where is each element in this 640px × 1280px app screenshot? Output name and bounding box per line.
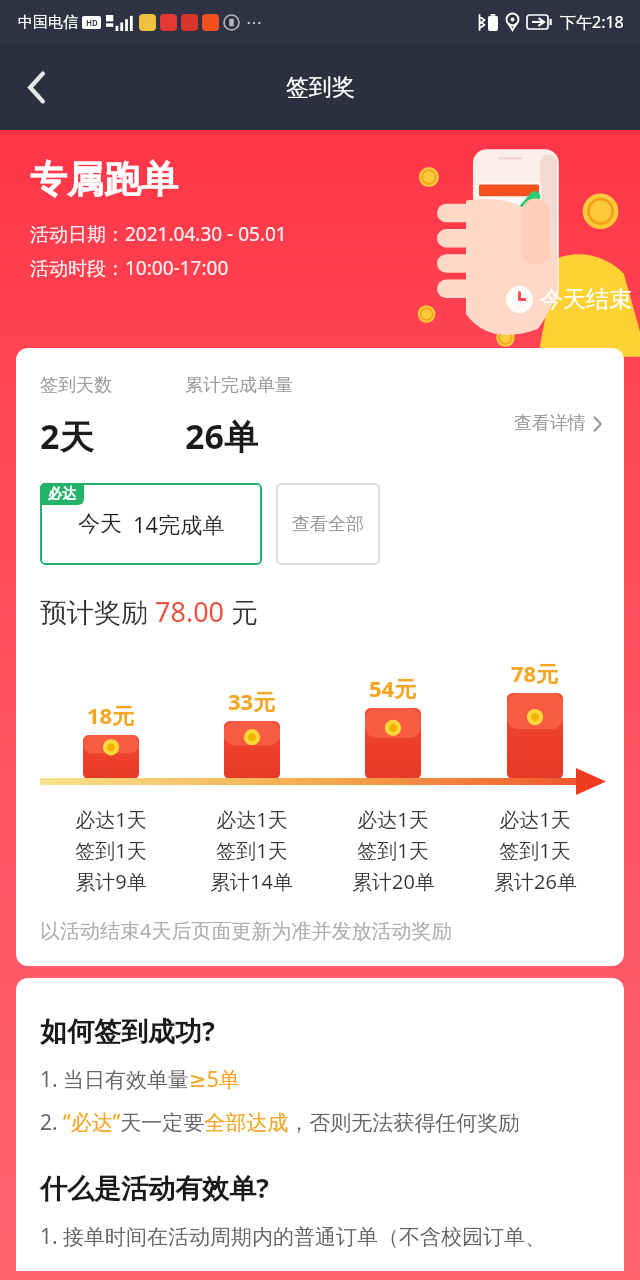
staticText: 26单 [185,413,258,459]
staticText: 33元 [228,686,276,716]
staticText: 签到奖 [286,73,355,102]
staticText: 今天 [78,510,122,538]
button[interactable]: 查看详情 [510,408,606,439]
staticText: 今天结束 [540,285,632,314]
staticText: 78元 [511,658,559,688]
staticText: 查看详情 [514,412,586,435]
staticText: 必达 [48,485,76,503]
staticText: 活动时段：10:00-17:00 [30,255,229,281]
button[interactable]: 返回 [0,44,72,130]
staticText: 必达1天 [216,806,288,833]
staticText: 1. 接单时间在活动周期内的普通订单（不含校园订单、 [40,1222,547,1251]
staticText: 2天 [40,413,94,459]
staticText: ⋯ [246,13,262,32]
staticText: 如何签到成功? [40,1012,215,1049]
staticText: 查看全部 [292,513,364,536]
staticText: 专属跑单 [30,156,178,203]
staticText: 签到1天 [357,837,429,864]
staticText: 签到1天 [499,837,571,864]
staticText: 活动日期：2021.04.30 - 05.01 [30,221,287,247]
staticText: 18元 [87,700,135,730]
staticText: 中国电信 [18,13,78,32]
staticText: 下午2:18 [560,11,624,33]
staticText: 必达1天 [357,806,429,833]
staticText: 1. 当日有效单量≥5单 [40,1065,240,1094]
staticText: 必达1天 [499,806,571,833]
staticText: 54元 [369,673,417,703]
staticText: 累计完成单量 [185,374,293,397]
staticText: 什么是活动有效单? [40,1169,269,1206]
staticText: 签到1天 [75,837,147,864]
staticText: HD [86,17,98,28]
staticText: 签到1天 [216,837,288,864]
button[interactable]: 查看全部 [276,483,380,565]
staticText: 以活动结束4天后页面更新为准并发放活动奖励 [40,917,452,944]
staticText: 14完成单 [133,509,225,539]
staticText: 累计20单 [352,868,435,895]
staticText: 必达1天 [75,806,147,833]
staticText: 预计奖励 78.00 元 [40,593,259,630]
staticText: 2. “必达”天一定要全部达成，否则无法获得任何奖励 [40,1108,520,1137]
staticText: 累计26单 [494,868,577,895]
button[interactable]: 今天 [40,483,262,565]
staticText: 签到天数 [40,374,112,397]
staticText: 累计14单 [210,868,293,895]
staticText: 累计9单 [75,868,147,895]
